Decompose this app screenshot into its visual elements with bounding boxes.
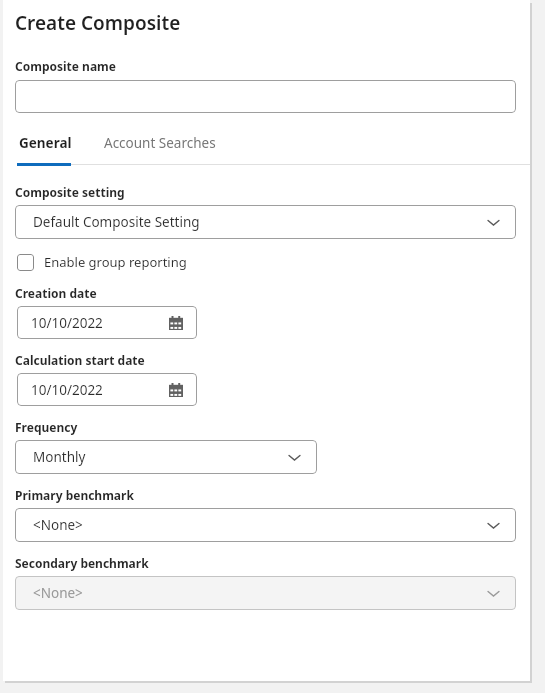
staticText: Primary benchmark: [15, 487, 134, 503]
button[interactable]: Default Composite Setting: [15, 205, 516, 239]
button[interactable]: General: [17, 130, 74, 156]
staticText: Frequency: [15, 419, 78, 435]
staticText: Enable group reporting: [44, 253, 187, 271]
staticText: Composite setting: [15, 184, 125, 200]
staticText: General: [19, 134, 72, 152]
staticText: Create Composite: [15, 10, 181, 36]
button[interactable]: Account Searches: [102, 130, 218, 156]
staticText: Default Composite Setting: [33, 213, 200, 231]
button[interactable]: 10/10/2022: [17, 373, 197, 406]
staticText: Calculation start date: [15, 352, 145, 368]
button[interactable]: Monthly: [15, 440, 317, 474]
staticText: <None>: [33, 516, 83, 534]
staticText: Creation date: [15, 285, 97, 301]
button[interactable]: <None>: [15, 508, 516, 542]
staticText: Account Searches: [104, 134, 216, 152]
staticText: 10/10/2022: [31, 381, 103, 399]
button[interactable]: [15, 80, 516, 113]
button[interactable]: <None>: [15, 576, 516, 610]
button[interactable]: Enable group reporting: [17, 249, 195, 275]
staticText: Composite name: [15, 58, 116, 74]
other: Open calendar: [169, 316, 183, 330]
staticText: 10/10/2022: [31, 314, 103, 332]
staticText: Monthly: [33, 448, 86, 466]
staticText: Secondary benchmark: [15, 555, 149, 571]
other: Open calendar: [169, 383, 183, 397]
button[interactable]: 10/10/2022: [17, 306, 197, 339]
staticText: <None>: [33, 584, 83, 602]
